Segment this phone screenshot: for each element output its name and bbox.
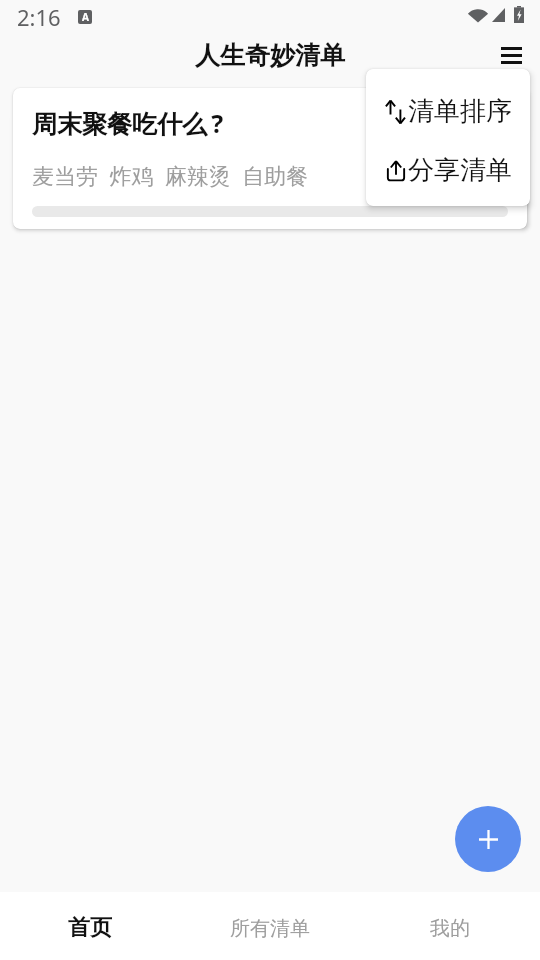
staticText: 我的 xyxy=(430,916,470,941)
button[interactable]: 首页 xyxy=(0,892,180,960)
button[interactable]: 清单排序 xyxy=(366,82,530,141)
button[interactable]: 我的 xyxy=(360,892,540,960)
button[interactable]: 所有清单 xyxy=(180,892,360,960)
button[interactable]: 分享清单 xyxy=(366,141,530,200)
button[interactable]: Add new list xyxy=(455,806,521,872)
staticText: 麦当劳 炸鸡 麻辣烫 自助餐 xyxy=(32,160,309,190)
button[interactable]: 周末聚餐吃什么 ? xyxy=(13,88,527,229)
button[interactable]: Menu xyxy=(487,31,535,79)
staticText: 清单排序 xyxy=(408,95,512,128)
staticText: 2:16 xyxy=(17,2,61,32)
staticText: A xyxy=(82,10,89,24)
staticText: 首页 xyxy=(68,914,112,942)
staticText: 人生奇妙清单 xyxy=(195,40,345,71)
staticText: 所有清单 xyxy=(230,916,310,941)
staticText: 周末聚餐吃什么 ? xyxy=(32,106,224,140)
staticText: 分享清单 xyxy=(408,154,512,187)
